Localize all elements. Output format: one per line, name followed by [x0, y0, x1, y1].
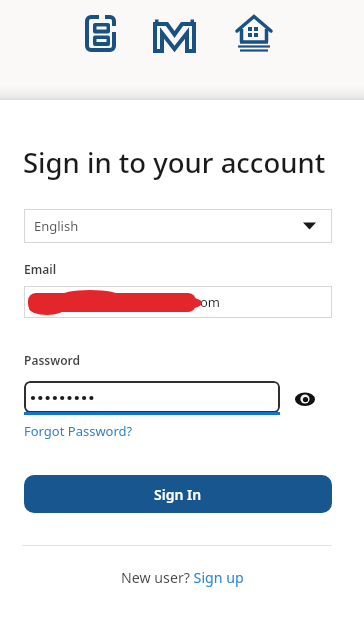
button[interactable] [24, 381, 280, 413]
button[interactable]: English [24, 209, 332, 243]
staticText: om [200, 293, 221, 311]
button[interactable]: om [24, 286, 332, 318]
button[interactable]: Sign In [24, 475, 332, 513]
button[interactable]: New user? Sign up [121, 568, 244, 587]
staticText: Sign In [154, 485, 202, 504]
button[interactable] [288, 388, 322, 410]
staticText: Password [24, 352, 81, 368]
staticText: English [34, 217, 79, 235]
staticText: Sign in to your account [23, 144, 326, 181]
button[interactable]: Forgot Password? [24, 422, 133, 440]
staticText: Email [24, 261, 57, 277]
